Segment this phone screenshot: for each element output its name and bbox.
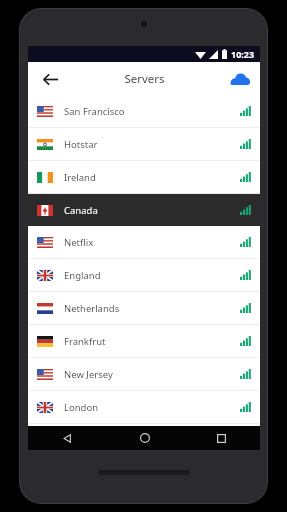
button[interactable]: Netherlands (28, 292, 260, 324)
button[interactable]: San Francisco (28, 95, 260, 127)
staticText: Netherlands (64, 302, 120, 315)
staticText: England (64, 269, 101, 282)
button[interactable]: London (28, 391, 260, 423)
staticText: Frankfrut (64, 335, 106, 348)
button[interactable]: Frankfrut (28, 325, 260, 357)
button[interactable]: New Jersey (28, 358, 260, 390)
staticText: Canada (64, 204, 98, 217)
staticText: 10:23 (231, 48, 255, 60)
button[interactable]: England (28, 259, 260, 291)
staticText: Servers (124, 71, 165, 87)
button[interactable]: Back (28, 426, 106, 450)
staticText: London (64, 401, 99, 414)
button[interactable]: Back (36, 65, 64, 93)
button[interactable]: Canada (28, 194, 260, 226)
staticText: New Jersey (64, 368, 113, 381)
button[interactable]: Home (106, 426, 183, 450)
staticText: Ireland (64, 171, 96, 184)
button[interactable]: Cloud (227, 66, 253, 92)
staticText: Netflix (64, 236, 94, 249)
staticText: San Francisco (64, 105, 125, 118)
staticText: Hotstar (64, 138, 98, 151)
button[interactable]: Recent apps (183, 426, 260, 450)
button[interactable]: Hotstar (28, 128, 260, 160)
button[interactable]: Ireland (28, 161, 260, 193)
button[interactable]: Netflix (28, 226, 260, 258)
